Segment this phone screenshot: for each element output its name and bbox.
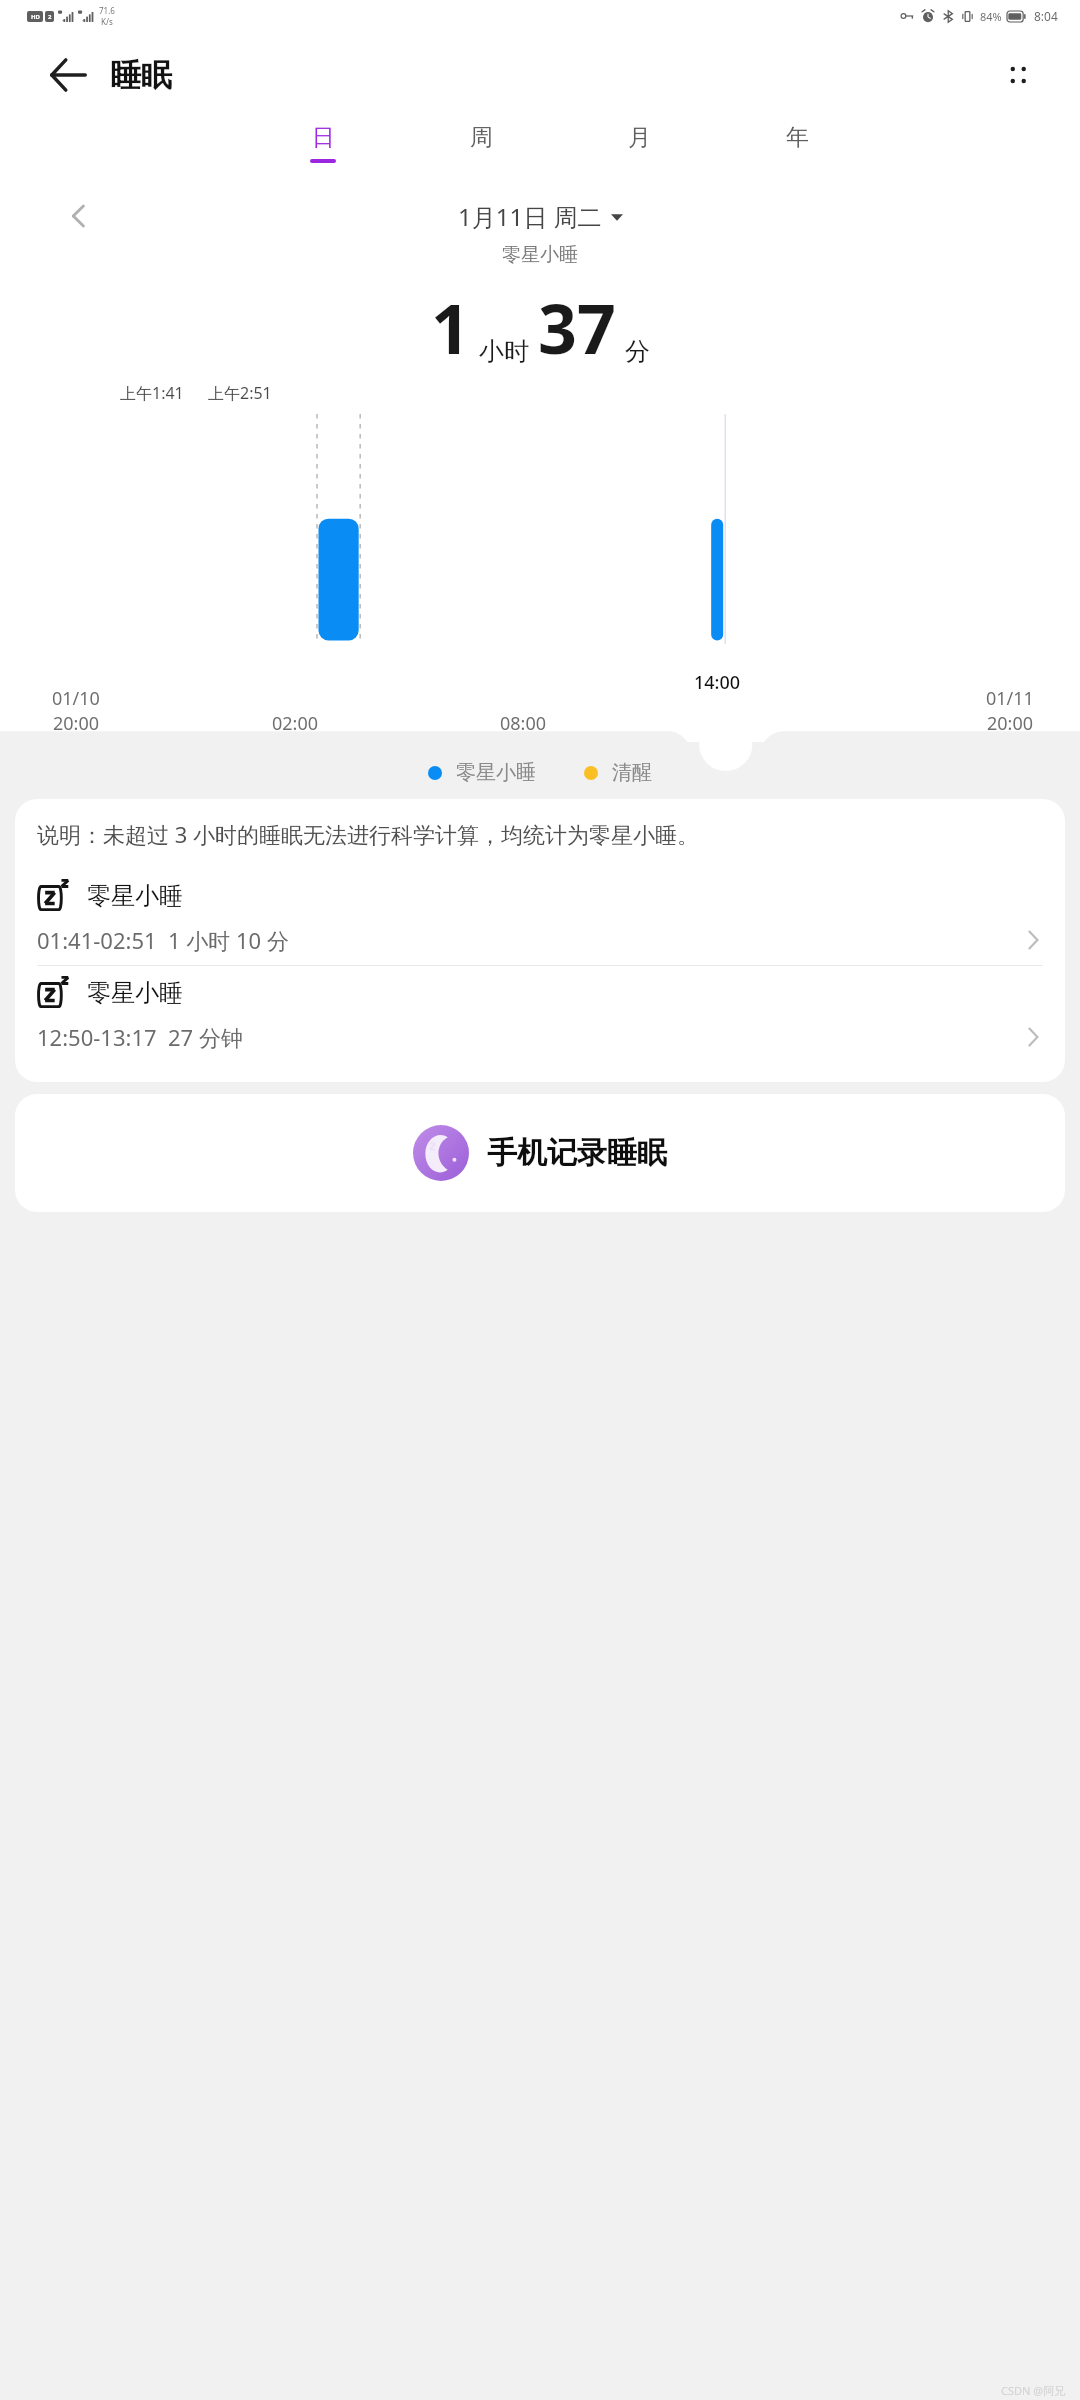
- staticText: 1月11日 周二: [458, 200, 602, 233]
- button[interactable]: 1月11日 周二: [452, 194, 629, 239]
- button[interactable]: Back: [40, 47, 96, 103]
- button[interactable]: Previous day: [56, 193, 102, 239]
- staticText: 零星小睡: [456, 760, 536, 785]
- staticText: 零星小睡: [87, 881, 183, 911]
- staticText: 71.6: [99, 5, 115, 16]
- button[interactable]: 零星小睡: [37, 869, 1043, 966]
- button[interactable]: 手机记录睡眠: [15, 1094, 1065, 1212]
- button[interactable]: 年: [774, 119, 820, 167]
- staticText: K/s: [101, 16, 113, 27]
- staticText: 2: [48, 13, 52, 21]
- staticText: 上午1:41: [120, 382, 184, 404]
- button[interactable]: 日: [300, 119, 346, 167]
- staticText: 02:00: [272, 711, 319, 736]
- staticText: 8:04: [1034, 8, 1058, 24]
- staticText: HD: [31, 13, 40, 21]
- staticText: 20:00: [987, 711, 1034, 736]
- staticText: 01:41-02:51 1 小时 10 分: [37, 925, 289, 955]
- staticText: 分: [625, 336, 650, 367]
- staticText: 小时: [479, 336, 529, 367]
- staticText: 84%: [980, 9, 1002, 24]
- staticText: CSDN @阿兄: [1001, 2383, 1066, 2398]
- staticText: 零星小睡: [0, 243, 1080, 267]
- staticText: 零星小睡: [87, 978, 183, 1008]
- staticText: 年: [786, 123, 809, 152]
- staticText: 20:00: [53, 711, 100, 736]
- staticText: 上午2:51: [208, 382, 272, 404]
- staticText: 12:50-13:17 27 分钟: [37, 1022, 243, 1052]
- staticText: 08:00: [500, 711, 547, 736]
- staticText: 37: [538, 281, 616, 374]
- staticText: 说明：未超过 3 小时的睡眠无法进行科学计算，均统计为零星小睡。: [37, 819, 700, 849]
- staticText: 清醒: [612, 760, 652, 785]
- staticText: 日: [312, 123, 335, 152]
- staticText: 01/10: [52, 686, 100, 711]
- button[interactable]: 月: [616, 119, 662, 167]
- staticText: 01/11: [986, 686, 1034, 711]
- staticText: 1: [431, 281, 470, 374]
- button[interactable]: More options: [990, 47, 1046, 103]
- button[interactable]: 零星小睡: [37, 966, 1043, 1062]
- staticText: 手机记录睡眠: [487, 1134, 667, 1172]
- staticText: 14:00: [694, 670, 741, 695]
- staticText: 周: [470, 123, 493, 152]
- staticText: 睡眠: [110, 56, 172, 95]
- staticText: 月: [628, 123, 651, 152]
- button[interactable]: 周: [458, 119, 504, 167]
